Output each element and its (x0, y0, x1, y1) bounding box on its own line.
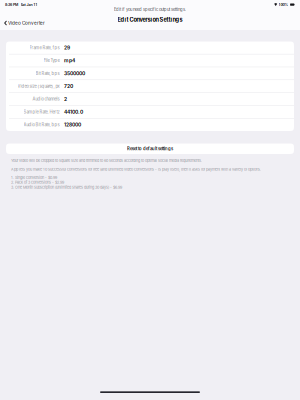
staticText: 128000 (64, 122, 81, 128)
staticText: Your video will be cropped to square siz… (11, 158, 202, 163)
staticText: Audio channels (32, 97, 59, 102)
staticText: 44100.0 (64, 109, 83, 115)
staticText: Frame Rate, fps (29, 45, 59, 50)
staticText: Reset to default settings (127, 146, 173, 151)
staticText: Video size (square), px (17, 84, 59, 89)
button[interactable]: Video Converter (0, 19, 70, 27)
staticText: 100% (278, 2, 288, 7)
staticText: 29 (64, 45, 70, 51)
staticText: App lets you make 10 successful conversi… (11, 167, 261, 172)
staticText: Sample Rate, Hertz (23, 109, 59, 114)
staticText: 720 (64, 83, 73, 89)
staticText: Audio Bit Rate, bps (23, 122, 59, 127)
staticText: 3500000 (64, 70, 85, 76)
staticText: mp4 (64, 58, 75, 64)
staticText: 2. Pack of 3 conversions - $2.99 (11, 180, 64, 185)
staticText: Edit Conversion Settings (117, 16, 182, 23)
staticText: File Type (43, 58, 59, 63)
staticText: 8:36 PM (5, 2, 18, 7)
staticText: Sat Jan 11 (21, 2, 38, 7)
staticText: Edit if you need specific output setting… (114, 7, 186, 12)
staticText: 2 (64, 96, 67, 102)
staticText: Bit Rate, bps (35, 71, 59, 76)
button[interactable]: Reset to default settings (0, 143, 300, 154)
staticText: 1. Single conversion - $0.99 (11, 175, 57, 180)
staticText: Video Converter (8, 20, 45, 26)
staticText: 3. One Month subscription (unlimited sha… (11, 185, 122, 190)
